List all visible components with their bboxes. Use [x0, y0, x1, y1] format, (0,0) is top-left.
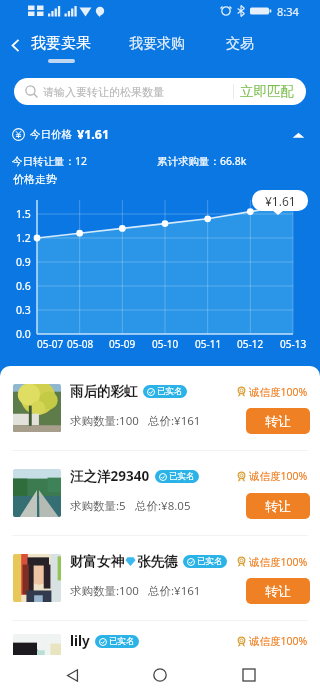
staticText: 已实名 — [197, 556, 223, 567]
staticText: 求购数量:5 — [70, 498, 126, 514]
staticText: 0.0 — [16, 327, 31, 341]
staticText: 总价:¥8.05 — [135, 498, 191, 514]
staticText: 05-07 — [37, 337, 64, 351]
staticText: 已实名 — [109, 636, 135, 647]
button[interactable]: 我要卖果 — [31, 34, 91, 63]
staticText: 诚信度100% — [249, 634, 308, 648]
staticText: 求购数量:100 — [70, 413, 139, 429]
button[interactable]: Recents — [232, 658, 266, 692]
button[interactable]: 财富女神 — [0, 536, 320, 621]
staticText: 05-13 — [280, 337, 307, 351]
staticText: 张先德 — [137, 553, 178, 570]
staticText: 已实名 — [157, 386, 183, 397]
button[interactable]: 转让 — [246, 578, 310, 604]
staticText: ¥1.61 — [265, 193, 296, 209]
button[interactable]: Back — [2, 32, 28, 58]
button[interactable]: 转让 — [246, 658, 310, 684]
button[interactable]: 转让 — [246, 408, 310, 434]
button[interactable]: 雨后的彩虹 — [0, 366, 320, 451]
staticText: 累计求购量：66.8k — [157, 154, 247, 168]
staticText: 1.5 — [16, 207, 31, 221]
staticText: 转让 — [265, 583, 291, 599]
staticText: 请输入要转让的松果数量 — [43, 85, 164, 99]
button[interactable]: Back — [55, 658, 89, 692]
staticText: 雨后的彩虹 — [70, 383, 138, 400]
staticText: 交易 — [226, 35, 254, 53]
staticText: 总价:¥161 — [148, 413, 201, 429]
button[interactable]: Collapse — [288, 125, 308, 145]
staticText: 0.9 — [16, 255, 31, 269]
staticText: 总价:¥80.5 — [142, 663, 198, 679]
staticText: 我要卖果 — [31, 34, 91, 53]
staticText: 今日价格 — [30, 128, 72, 141]
staticText: 诚信度100% — [249, 555, 308, 569]
staticText: 0.3 — [16, 303, 31, 317]
staticText: 8:34 — [277, 4, 299, 19]
button[interactable]: lily — [0, 621, 320, 694]
staticText: 05-10 — [152, 337, 179, 351]
button[interactable]: 立即匹配 — [234, 83, 300, 100]
button[interactable]: 我要求购 — [129, 35, 185, 53]
staticText: 求购数量:50 — [70, 663, 133, 679]
staticText: 05-11 — [195, 337, 222, 351]
staticText: 求购数量:100 — [70, 583, 139, 599]
staticText: 立即匹配 — [240, 83, 294, 100]
staticText: 1.2 — [16, 231, 31, 245]
staticText: 05-08 — [67, 337, 94, 351]
staticText: 总价:¥161 — [148, 583, 201, 599]
staticText: lily — [70, 632, 90, 650]
staticText: 转让 — [265, 413, 291, 429]
staticText: 转让 — [265, 498, 291, 514]
staticText: 汪之洋29340 — [70, 467, 150, 485]
staticText: 我要求购 — [129, 35, 185, 53]
button[interactable]: Home — [143, 658, 177, 692]
staticText: 05-09 — [109, 337, 136, 351]
staticText: 0.6 — [16, 279, 31, 293]
staticText: 财富女神 — [70, 553, 124, 570]
staticText: 诚信度100% — [249, 385, 308, 399]
staticText: 05-12 — [237, 337, 264, 351]
button[interactable]: 交易 — [226, 35, 254, 53]
staticText: 今日转让量：12 — [12, 154, 88, 168]
staticText: 已实名 — [169, 471, 195, 482]
staticText: 诚信度100% — [249, 469, 308, 483]
staticText: 价格走势 — [13, 172, 57, 186]
button[interactable]: 汪之洋29340 — [0, 451, 320, 536]
staticText: ¥1.61 — [77, 126, 110, 143]
button[interactable]: 转让 — [246, 493, 310, 519]
